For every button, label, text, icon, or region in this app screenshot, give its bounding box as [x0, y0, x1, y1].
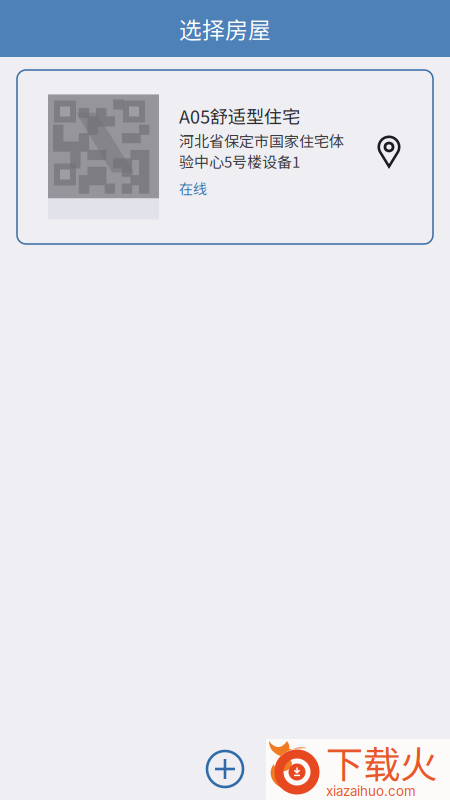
staticText: 选择房屋: [179, 12, 271, 45]
button[interactable]: A05舒适型住宅: [17, 70, 433, 244]
staticText: xiazaihuo.com: [326, 783, 416, 799]
button[interactable]: 添加房屋: [207, 751, 243, 787]
staticText: 下载火: [326, 735, 437, 789]
staticText: A05舒适型住宅: [179, 103, 300, 129]
staticText: 在线: [179, 178, 207, 198]
staticText: 河北省保定市国家住宅体验中心5号楼设备1: [179, 130, 344, 172]
